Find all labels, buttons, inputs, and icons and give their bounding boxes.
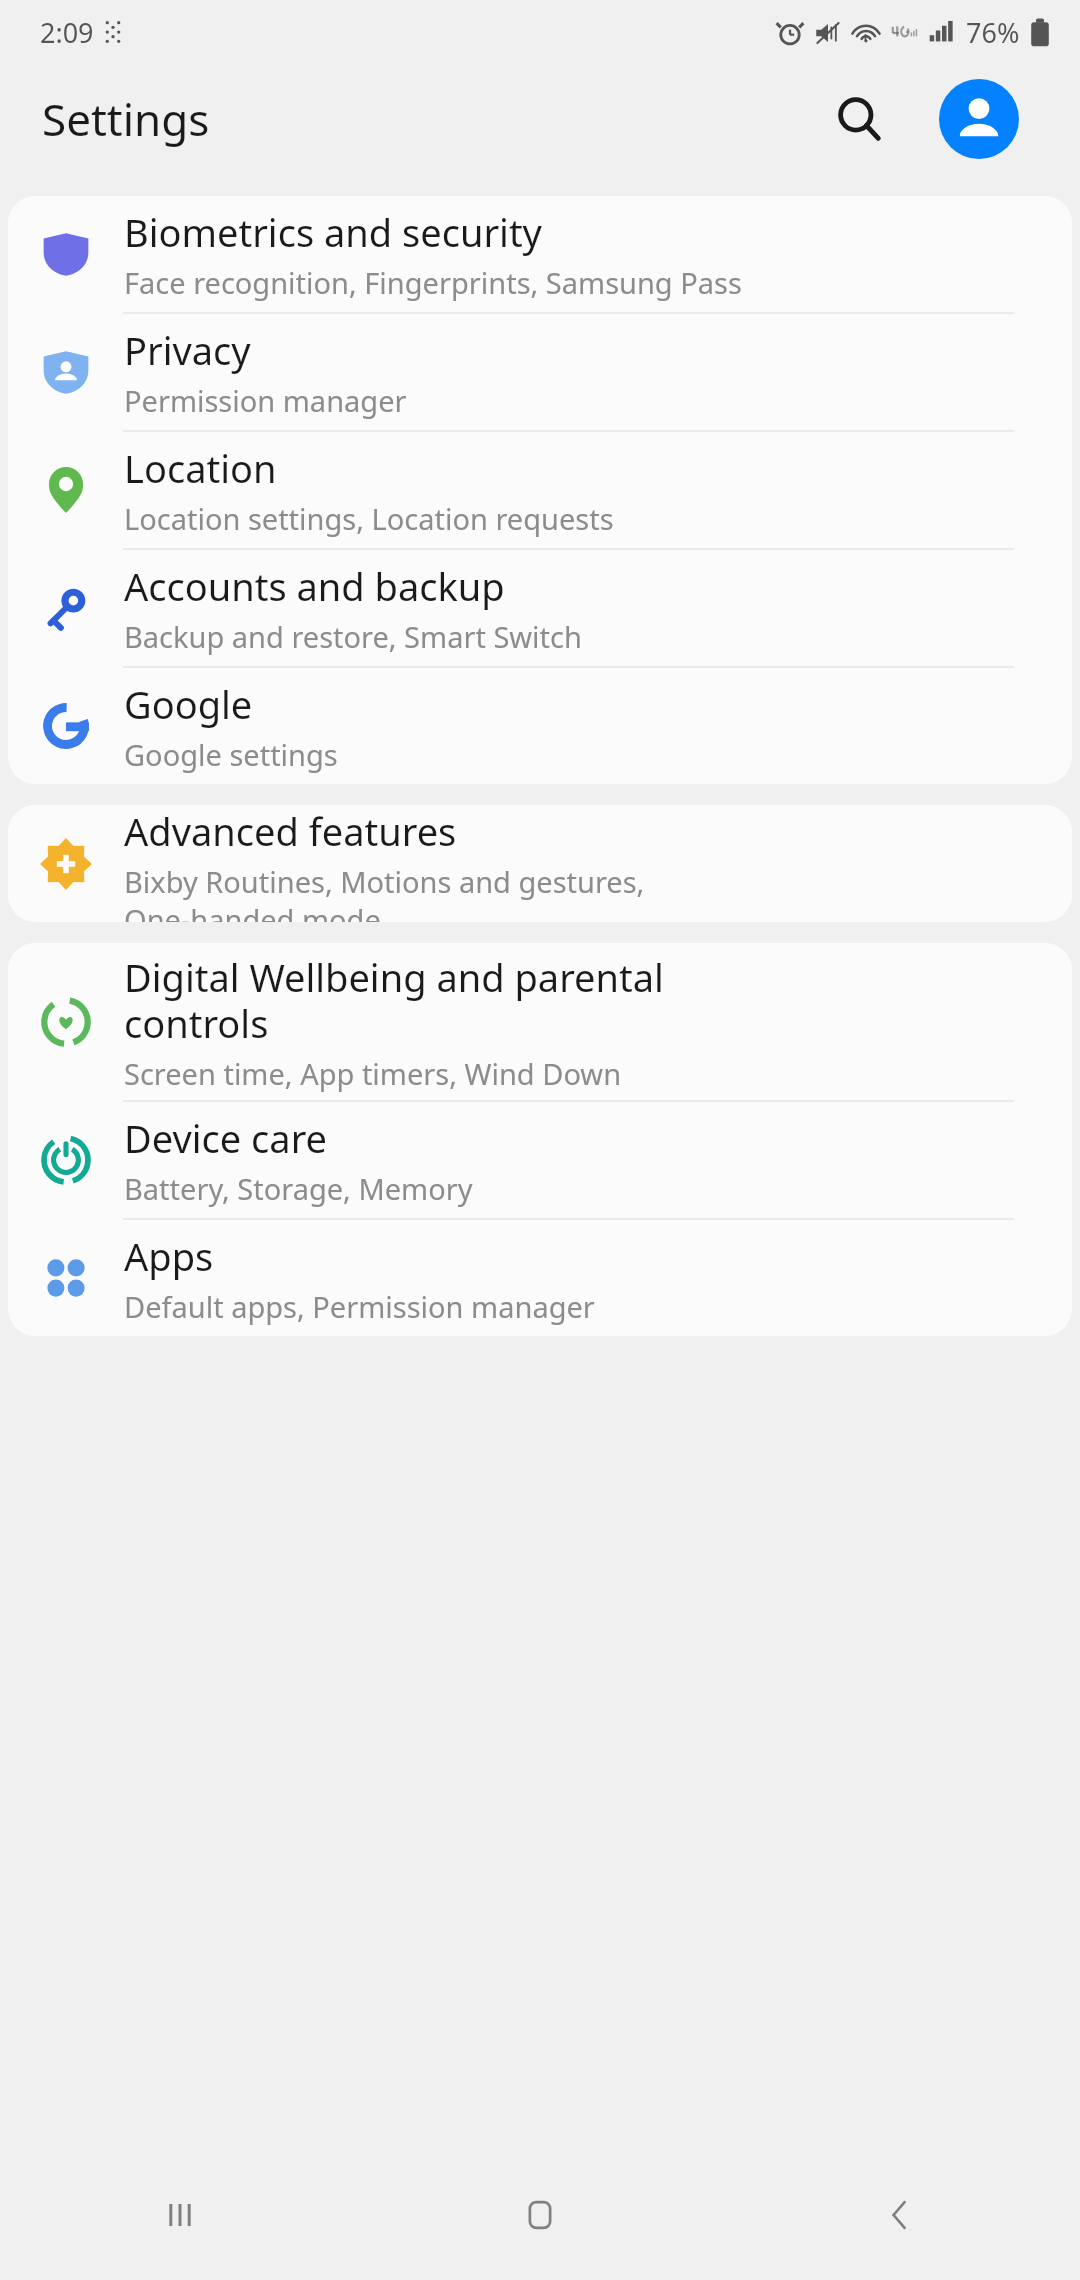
staticText: Screen time, App timers, Wind Down — [124, 1054, 622, 1093]
staticText: Google settings — [124, 735, 338, 774]
button[interactable]: Digital Wellbeing and parental controls — [8, 943, 1072, 1100]
staticText: Default apps, Permission manager — [124, 1287, 595, 1326]
staticText: Apps — [124, 1230, 214, 1282]
button[interactable]: Biometrics and security — [8, 196, 1072, 312]
button[interactable]: Device care — [8, 1102, 1072, 1218]
button[interactable]: Accounts and backup — [8, 550, 1072, 666]
button[interactable]: Back — [720, 2150, 1080, 2280]
button[interactable]: Recents — [0, 2150, 360, 2280]
staticText: 2:09 — [40, 14, 94, 51]
staticText: Backup and restore, Smart Switch — [124, 617, 582, 656]
button[interactable]: Search — [816, 76, 902, 162]
button[interactable]: Advanced features — [8, 805, 1072, 922]
button[interactable]: Home — [360, 2150, 720, 2280]
staticText: Accounts and backup — [124, 560, 505, 612]
staticText: Battery, Storage, Memory — [124, 1169, 473, 1208]
staticText: Biometrics and security — [124, 206, 543, 258]
staticText: Google — [124, 678, 253, 730]
button[interactable]: Google — [8, 668, 1072, 784]
staticText: Location — [124, 442, 277, 494]
button[interactable]: Apps — [8, 1220, 1072, 1336]
button[interactable]: Privacy — [8, 314, 1072, 430]
staticText: Face recognition, Fingerprints, Samsung … — [124, 263, 742, 302]
staticText: 76% — [966, 14, 1020, 51]
staticText: Location settings, Location requests — [124, 499, 614, 538]
staticText: Advanced features — [124, 805, 457, 857]
staticText: Privacy — [124, 324, 251, 376]
staticText: Bixby Routines, Motions and gestures, On… — [124, 862, 645, 922]
staticText: Device care — [124, 1112, 327, 1164]
button[interactable]: Location — [8, 432, 1072, 548]
staticText: Permission manager — [124, 381, 407, 420]
staticText: Settings — [42, 89, 210, 149]
staticText: Digital Wellbeing and parental controls — [124, 951, 664, 1049]
button[interactable]: Account — [936, 76, 1022, 162]
